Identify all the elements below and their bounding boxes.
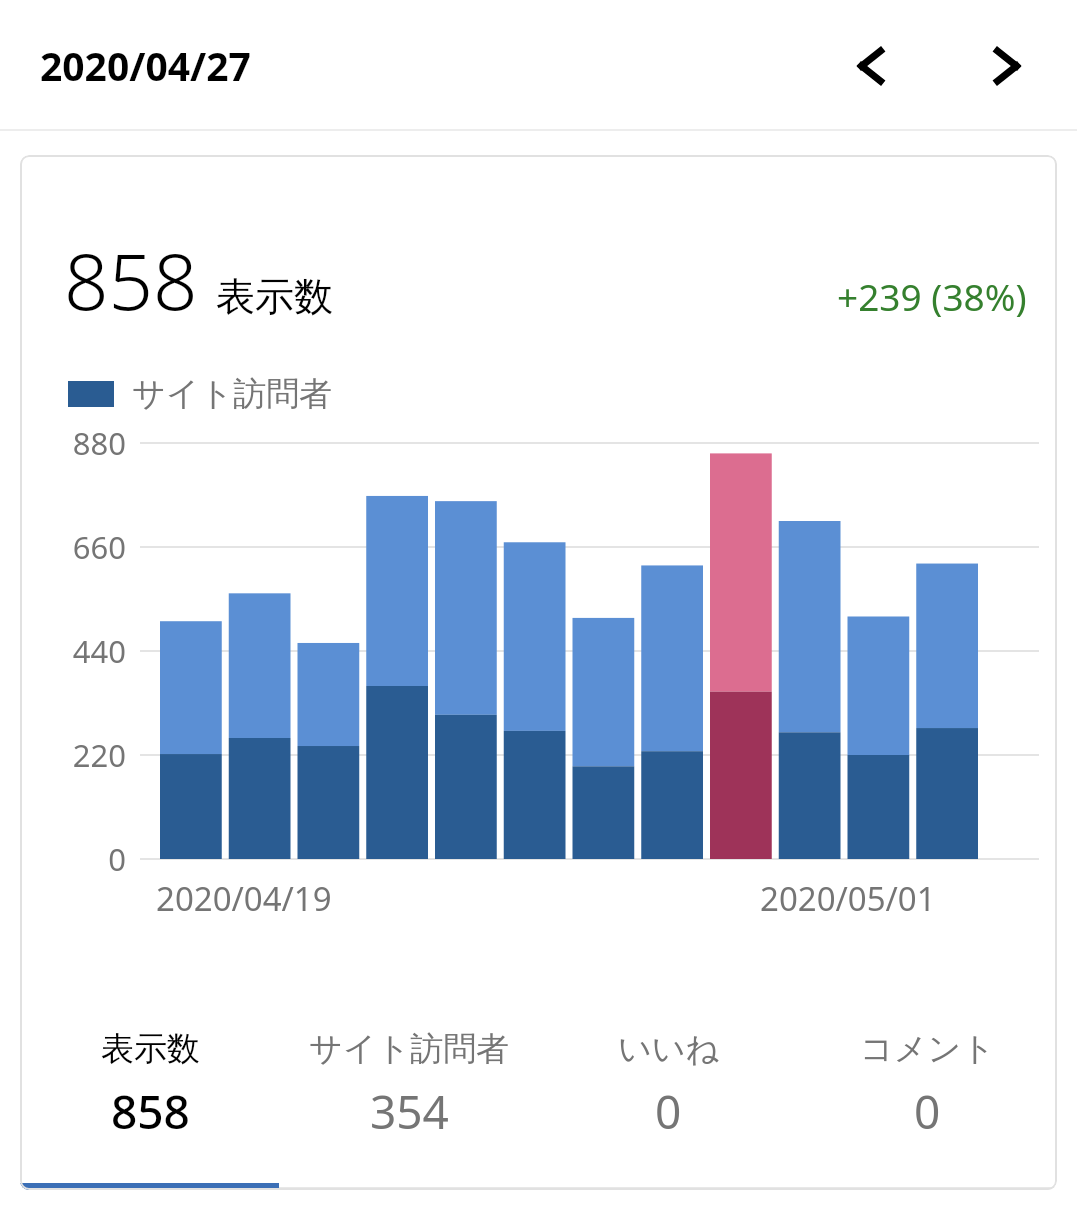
staticText: コメント — [860, 1028, 996, 1070]
staticText: 表示数 — [101, 1028, 200, 1070]
staticText: 220 — [20, 734, 126, 776]
button[interactable]: 表示数 — [20, 1022, 280, 1149]
staticText: 0 — [20, 838, 126, 880]
button[interactable]: コメント — [798, 1022, 1057, 1149]
staticText: 0 — [655, 1080, 682, 1143]
button[interactable]: Next day — [967, 26, 1047, 106]
staticText: 2020/04/19 — [156, 876, 332, 921]
staticText: 2020/05/01 — [760, 876, 936, 921]
staticText: 880 — [20, 422, 126, 464]
staticText: 354 — [370, 1080, 449, 1143]
button[interactable]: Previous day — [831, 26, 911, 106]
staticText: サイト訪問者 — [309, 1028, 510, 1070]
button[interactable]: サイト訪問者 — [280, 1022, 539, 1149]
staticText: サイト訪問者 — [132, 373, 333, 415]
staticText: 660 — [20, 526, 126, 568]
button[interactable]: いいね — [539, 1022, 798, 1149]
staticText: 858 — [111, 1080, 190, 1143]
staticText: 0 — [914, 1080, 941, 1143]
staticText: 858 — [64, 227, 198, 333]
staticText: +239 (38%) — [837, 271, 1027, 321]
staticText: いいね — [618, 1028, 720, 1070]
staticText: 2020/04/27 — [40, 39, 251, 92]
staticText: 表示数 — [216, 272, 333, 321]
staticText: 440 — [20, 630, 126, 672]
